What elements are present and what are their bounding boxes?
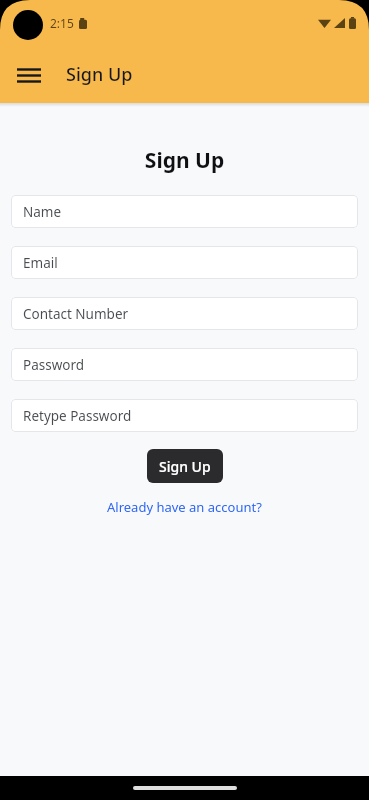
button[interactable]: Already have an account? [99,494,270,520]
button[interactable]: Contact Number [11,297,358,330]
staticText: Retype Password [23,407,132,425]
button[interactable]: Sign Up [147,449,223,483]
staticText: Sign Up [159,457,211,476]
staticText: Password [23,356,85,374]
staticText: Already have an account? [107,498,262,516]
staticText: Sign Up [0,146,369,175]
button[interactable]: Name [11,195,358,228]
button[interactable]: Open navigation menu [7,53,51,97]
staticText: Sign Up [66,62,133,87]
button[interactable]: Retype Password [11,399,358,432]
staticText: Email [23,254,58,272]
button[interactable]: Email [11,246,358,279]
staticText: Name [23,203,62,221]
staticText: 2:15 [50,15,74,31]
staticText: Contact Number [23,305,129,323]
button[interactable]: Password [11,348,358,381]
